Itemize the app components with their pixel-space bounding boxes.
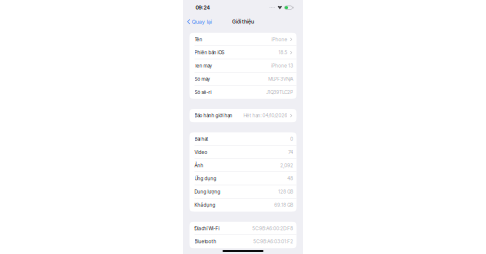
- staticText: Bảo hành giới hạn: [194, 113, 232, 118]
- button[interactable]: Ảnh: [189, 159, 296, 172]
- staticText: Tên: [194, 36, 202, 42]
- staticText: 74: [288, 149, 293, 155]
- staticText: 2,092: [280, 162, 293, 168]
- button[interactable]: Địa chỉ Wi-Fi: [189, 222, 296, 235]
- staticText: Bài hát: [194, 136, 208, 142]
- staticText: 128 GB: [278, 189, 293, 195]
- button[interactable]: Tên: [189, 33, 296, 46]
- staticText: iPhone 13: [271, 63, 293, 69]
- staticText: Ảnh: [194, 162, 203, 168]
- button[interactable]: Tên máy: [189, 59, 296, 72]
- staticText: Hết hạn: 04/10/2026: [243, 113, 287, 118]
- staticText: J1Q39TLC2P: [266, 89, 293, 95]
- button[interactable]: Video: [189, 146, 296, 159]
- staticText: 69.18 GB: [274, 202, 293, 208]
- staticText: Số sê-ri: [194, 89, 211, 95]
- staticText: Dung lượng: [194, 189, 220, 195]
- staticText: Địa chỉ Wi-Fi: [194, 225, 219, 231]
- button[interactable]: Bluetooth: [189, 235, 296, 248]
- staticText: Quay lại: [192, 18, 212, 25]
- staticText: 0: [290, 136, 293, 142]
- staticText: Tên máy: [194, 63, 211, 69]
- staticText: Video: [194, 149, 207, 155]
- staticText: 09:24: [195, 4, 209, 11]
- staticText: Ứng dụng: [194, 176, 216, 181]
- staticText: Bluetooth: [194, 239, 216, 244]
- button[interactable]: Bảo hành giới hạn: [189, 109, 296, 122]
- button[interactable]: Số máy: [189, 72, 296, 86]
- staticText: 48: [287, 176, 293, 181]
- button[interactable]: Ứng dụng: [189, 172, 296, 185]
- button[interactable]: Bài hát: [189, 132, 296, 146]
- button[interactable]: Phiên bản iOS: [189, 46, 296, 59]
- staticText: 5C:9B:A6:00:2D:F8: [252, 225, 293, 231]
- button[interactable]: Số sê-ri: [189, 86, 296, 99]
- button[interactable]: Quay lại: [183, 16, 212, 27]
- staticText: Khả dụng: [194, 202, 215, 208]
- staticText: 18.5: [278, 50, 287, 55]
- staticText: 5C:9B:A6:03:01:F2: [253, 239, 293, 244]
- staticText: Giới thiệu: [232, 18, 254, 25]
- staticText: iPhone: [271, 36, 287, 42]
- staticText: Số máy: [194, 76, 209, 82]
- button[interactable]: Dung lượng: [189, 185, 296, 198]
- button[interactable]: Khả dụng: [189, 198, 296, 212]
- staticText: Phiên bản iOS: [194, 50, 224, 55]
- staticText: MLPF3VN/A: [268, 76, 293, 82]
